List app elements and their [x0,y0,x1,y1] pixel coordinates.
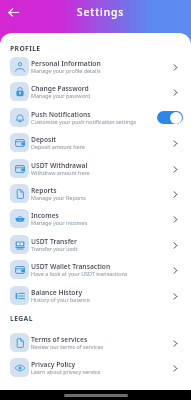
staticText: Deposit amount here [31,143,85,150]
button[interactable]: Incomes [0,206,191,231]
staticText: Withdraw amount here [31,169,90,176]
button[interactable]: USDT Transfer [0,232,191,257]
staticText: Review our terms of services [31,343,104,350]
staticText: USDT Withdrawal [31,161,88,170]
button[interactable]: Balance History [0,283,191,308]
staticText: Settings [77,5,125,19]
staticText: Balance History [31,288,83,297]
button[interactable]: USDT Wallet Transaction [0,257,191,282]
button[interactable]: Reports [0,181,191,206]
button[interactable]: Push Notifications [0,105,191,130]
button[interactable]: Personal Information [0,54,191,79]
staticText: Learn about privacy service [31,368,101,375]
staticText: Manage your password [31,92,91,99]
staticText: Terms of services [31,335,88,344]
staticText: Push Notifications [31,110,91,119]
staticText: USDT Transfer [31,237,77,246]
staticText: Change Password [31,84,89,93]
staticText: Deposit [31,135,57,144]
button[interactable]: Change Password [0,79,191,104]
button[interactable]: Back [4,3,23,22]
button[interactable]: Privacy Policy [0,355,191,380]
staticText: History of your balance [31,296,90,303]
staticText: Manage your profile details [31,67,101,74]
staticText: Transfer your usdt [31,245,78,252]
staticText: Manage your incomes [31,219,88,226]
staticText: Reports [31,186,57,195]
button[interactable]: Terms of services [0,330,191,355]
staticText: Have a look at your USDT transactions [31,270,128,277]
staticText: Personal Information [31,59,101,68]
staticText: Privacy Policy [31,360,76,369]
button[interactable]: Toggle push notifications [157,111,183,124]
staticText: PROFILE [10,44,41,53]
button[interactable]: Deposit [0,130,191,155]
staticText: LEGAL [10,314,33,323]
staticText: Incomes [31,211,59,220]
staticText: Customize your push notification setting… [31,118,137,125]
button[interactable]: USDT Withdrawal [0,156,191,181]
staticText: USDT Wallet Transaction [31,262,111,271]
staticText: Manage your Reports [31,194,86,201]
